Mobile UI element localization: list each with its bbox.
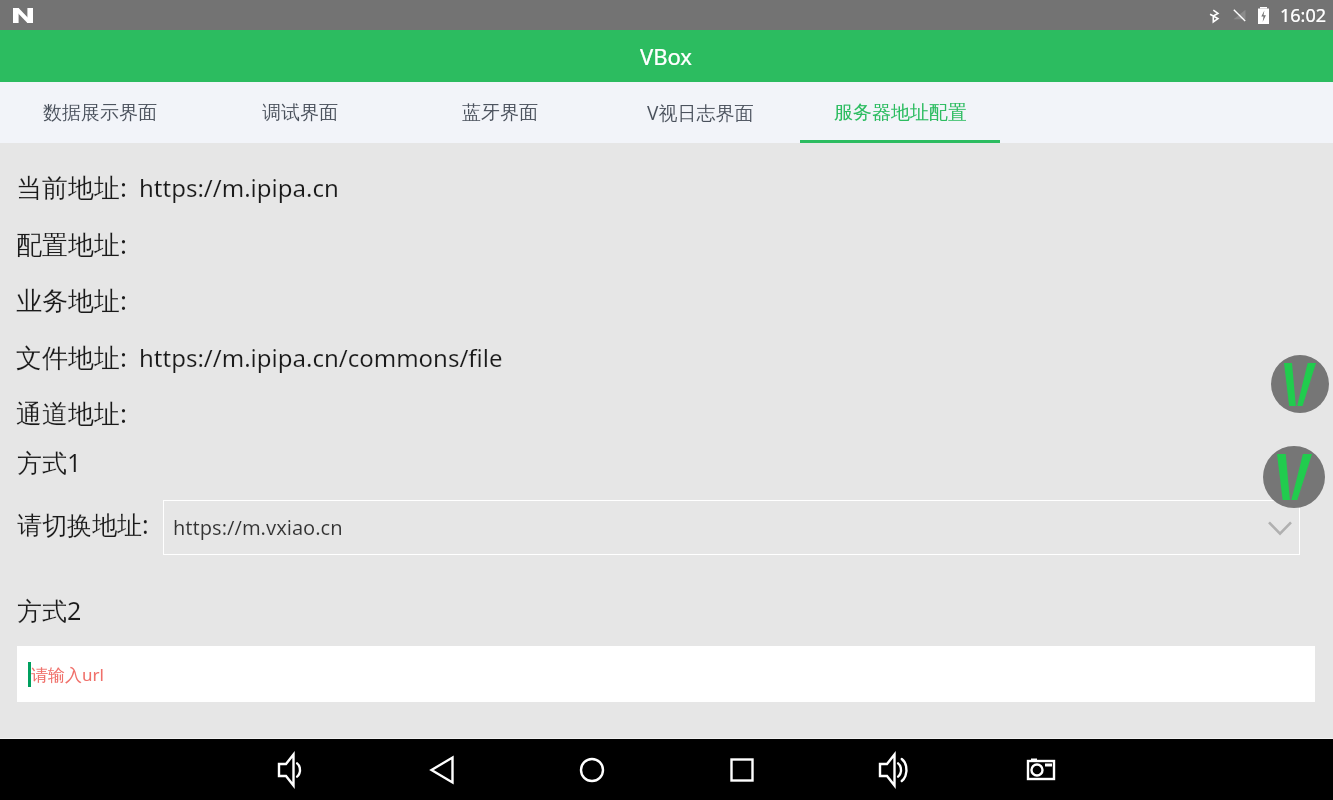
button[interactable]: Back: [418, 746, 466, 794]
staticText: https://m.ipipa.cn: [139, 171, 339, 204]
button[interactable]: Volume up: [867, 746, 915, 794]
staticText: VBox: [640, 41, 693, 71]
button[interactable]: Volume down: [266, 746, 314, 794]
button[interactable]: 数据展示界面: [0, 82, 200, 143]
staticText: 通道地址:: [16, 395, 127, 431]
staticText: 方式1: [17, 445, 82, 479]
button[interactable]: V视日志界面: [600, 82, 800, 143]
staticText: 16:02: [1280, 3, 1327, 28]
button[interactable]: 调试界面: [200, 82, 400, 143]
staticText: 方式2: [17, 593, 82, 627]
button[interactable]: VBox quick action: [1271, 355, 1329, 413]
staticText: 蓝牙界面: [462, 101, 538, 125]
staticText: 业务地址:: [16, 282, 127, 318]
button[interactable]: Screenshot: [1017, 746, 1065, 794]
staticText: 当前地址:: [16, 169, 127, 205]
staticText: 配置地址:: [16, 226, 127, 262]
other: NFC enabled: [13, 8, 33, 23]
staticText: 文件地址:: [16, 339, 127, 375]
button[interactable]: https://m.vxiao.cn: [163, 500, 1300, 555]
button[interactable]: Recent apps: [718, 746, 766, 794]
staticText: 请切换地址:: [17, 507, 149, 541]
staticText: https://m.ipipa.cn/commons/file: [139, 341, 503, 374]
staticText: V视日志界面: [647, 100, 754, 126]
button[interactable]: VBox quick action: [1263, 446, 1325, 508]
staticText: 请输入url: [31, 663, 104, 686]
button[interactable]: 蓝牙界面: [400, 82, 600, 143]
staticText: 调试界面: [262, 101, 338, 125]
button[interactable]: 服务器地址配置: [800, 82, 1000, 143]
staticText: https://m.vxiao.cn: [173, 514, 343, 541]
button[interactable]: Home: [568, 746, 616, 794]
button[interactable]: 请输入url: [17, 646, 1315, 702]
staticText: 数据展示界面: [43, 101, 157, 125]
staticText: 服务器地址配置: [834, 101, 967, 125]
